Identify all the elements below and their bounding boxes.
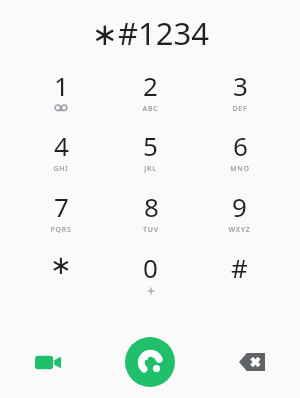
staticText: 6 [233, 128, 248, 163]
button[interactable]: 3 [195, 66, 284, 126]
button[interactable]: Video call [12, 338, 84, 386]
staticText: TUV [143, 225, 159, 235]
staticText: MNO [230, 164, 250, 174]
staticText: 0 [143, 250, 158, 285]
staticText: 8 [144, 189, 159, 224]
staticText: WXYZ [228, 225, 251, 235]
staticText: PQRS [50, 225, 72, 235]
staticText: 5 [143, 128, 158, 163]
staticText: ∗ [50, 250, 72, 280]
button[interactable]: 5 [106, 126, 195, 187]
button[interactable]: 9 [195, 187, 284, 248]
button[interactable]: Backspace [216, 338, 288, 386]
staticText: 9 [232, 189, 247, 224]
staticText: 2 [143, 68, 158, 103]
button[interactable]: Call [125, 337, 175, 387]
staticText: ABC [142, 104, 159, 114]
button[interactable]: 4 [16, 126, 106, 187]
button[interactable]: 0 [106, 248, 195, 304]
button[interactable]: 8 [106, 187, 195, 248]
staticText: # [231, 250, 248, 285]
button[interactable]: 6 [195, 126, 284, 187]
staticText: DEF [232, 104, 248, 114]
staticText: 1 [54, 68, 69, 103]
button[interactable]: 1 [16, 66, 106, 126]
staticText: 3 [233, 68, 248, 103]
staticText: 4 [54, 128, 69, 163]
button[interactable]: ∗ [16, 248, 106, 304]
staticText: 7 [54, 189, 69, 224]
button[interactable]: # [195, 248, 284, 304]
staticText: GHI [53, 164, 69, 174]
staticText: JKL [144, 164, 157, 174]
button[interactable]: 2 [106, 66, 195, 126]
button[interactable]: 7 [16, 187, 106, 248]
staticText: ∗#1234 [92, 12, 209, 54]
